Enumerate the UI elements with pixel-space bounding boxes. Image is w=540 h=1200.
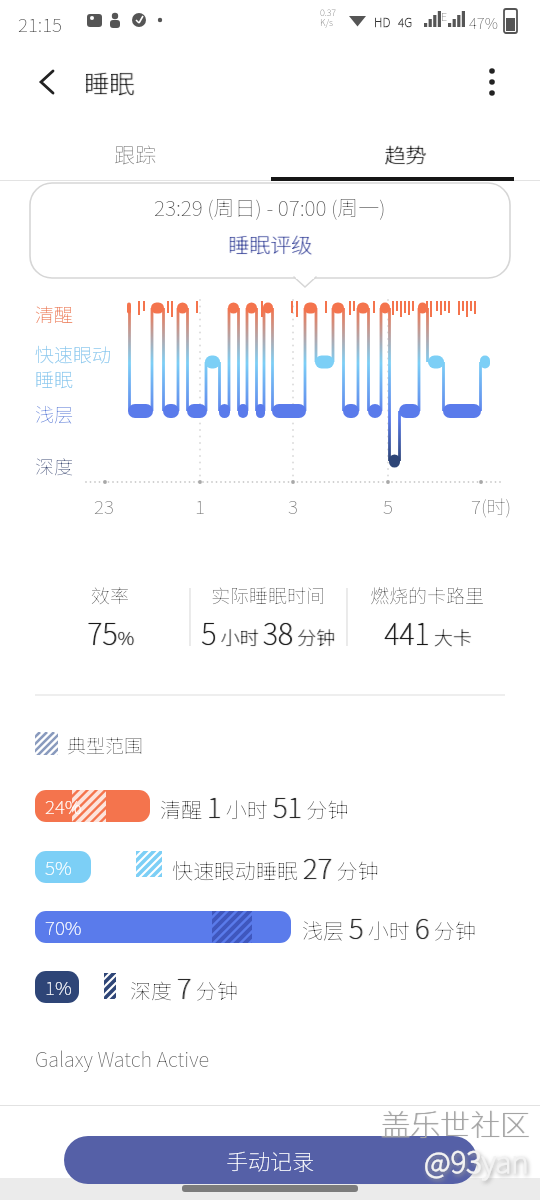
staticText: 75% xyxy=(87,611,134,653)
staticText: 效率 xyxy=(91,581,130,609)
staticText: 1 xyxy=(195,492,205,520)
staticText: HD xyxy=(374,13,391,30)
staticText: 441 大卡 xyxy=(384,611,472,653)
staticText: 70% xyxy=(45,913,82,941)
staticText: 1% xyxy=(45,973,72,1001)
staticText: 燃烧的卡路里 xyxy=(370,581,485,609)
staticText: 实际睡眠时间 xyxy=(211,581,326,609)
button[interactable]: 23:29 (周日) - 07:00 (周一) xyxy=(30,183,510,278)
staticText: 5% xyxy=(45,853,72,881)
staticText: 5 xyxy=(383,492,393,520)
button[interactable] xyxy=(28,62,68,102)
staticText: @93yan xyxy=(424,1138,529,1181)
staticText: 快速眼动睡眠 27 分钟 xyxy=(172,847,379,888)
staticText: 典型范围 xyxy=(67,731,144,759)
staticText: 清醒 xyxy=(35,300,74,328)
staticText: 跟踪 xyxy=(114,139,156,169)
staticText: E xyxy=(441,8,448,24)
staticText: 清醒 1 小时 51 分钟 xyxy=(160,786,349,827)
staticText: 睡眠 xyxy=(84,64,135,100)
staticText: 盖乐世社区 xyxy=(380,1101,530,1144)
staticText: 23 xyxy=(94,492,114,520)
staticText: 睡眠 xyxy=(35,365,74,393)
staticText: 3 xyxy=(288,492,298,520)
staticText: 睡眠评级 xyxy=(228,229,312,259)
staticText: 深度 7 分钟 xyxy=(130,967,238,1008)
staticText: 手动记录 xyxy=(226,1144,315,1176)
staticText: 趋势 xyxy=(384,139,426,169)
staticText: 7(时) xyxy=(471,492,512,520)
staticText: 4G xyxy=(398,13,413,30)
button[interactable]: 手动记录 xyxy=(64,1136,477,1184)
button[interactable]: 跟踪 xyxy=(0,128,270,180)
staticText: 快速眼动 xyxy=(35,340,112,368)
staticText: Galaxy Watch Active xyxy=(35,1044,210,1073)
button[interactable]: 趋势 xyxy=(270,128,540,180)
staticText: 5 小时 38 分钟 xyxy=(201,611,335,653)
staticText: 21:15 xyxy=(18,10,62,38)
staticText: 0.37 K/s xyxy=(320,6,337,29)
staticText: 浅层 5 小时 6 分钟 xyxy=(302,907,476,948)
staticText: 24% xyxy=(45,792,82,820)
staticText: 23:29 (周日) - 07:00 (周一) xyxy=(154,192,386,222)
staticText: 浅层 xyxy=(35,400,74,428)
staticText: 47% xyxy=(469,12,498,34)
button[interactable] xyxy=(472,62,512,102)
staticText: 深度 xyxy=(35,452,74,480)
